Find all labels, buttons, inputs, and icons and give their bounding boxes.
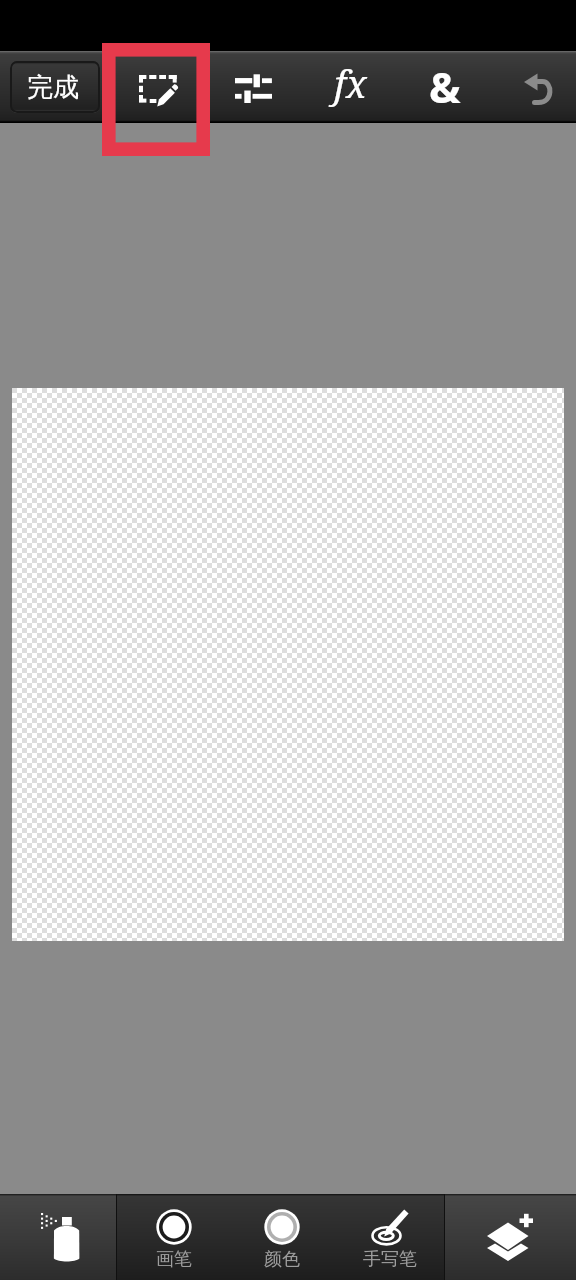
button[interactable]: Undo [492, 51, 576, 123]
staticText: 完成 [27, 71, 79, 104]
button[interactable]: 画笔 [120, 1194, 228, 1280]
staticText: fx [334, 57, 367, 109]
button[interactable]: 手写笔 [336, 1194, 444, 1280]
button[interactable]: Adjust [206, 51, 300, 123]
button[interactable]: 完成 [10, 61, 100, 113]
button[interactable]: Add layer [445, 1194, 576, 1280]
staticText: & [429, 58, 461, 115]
button[interactable]: Blend modes [398, 51, 492, 123]
button[interactable]: Effects [303, 51, 397, 123]
staticText: 颜色 [264, 1248, 300, 1271]
button[interactable]: Spray tool [0, 1194, 116, 1280]
button[interactable]: 颜色 [228, 1194, 336, 1280]
staticText: 手写笔 [363, 1248, 417, 1271]
staticText: 画笔 [156, 1248, 192, 1271]
button[interactable]: Select and edit [112, 51, 206, 123]
